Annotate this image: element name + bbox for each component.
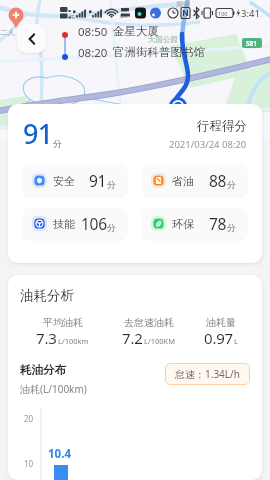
staticText: 7.2 — [122, 328, 143, 348]
staticText: 分 — [53, 138, 62, 149]
staticText: 郑洲 — [176, 0, 190, 9]
staticText: 分 — [227, 222, 236, 233]
staticText: 10.4 — [48, 446, 71, 462]
staticText: B/s — [120, 13, 128, 20]
button[interactable]: 环保 — [142, 208, 247, 239]
staticText: 65 — [121, 6, 128, 13]
staticText: 耗油分布 — [20, 363, 66, 377]
staticText: L/100km — [58, 336, 89, 346]
staticText: 油耗(L/100km) — [20, 382, 87, 396]
staticText: 20 — [24, 413, 34, 424]
staticText: 分 — [107, 222, 116, 233]
staticText: S81 — [246, 39, 258, 48]
staticText: 7.3 — [36, 328, 57, 348]
staticText: 去怠速油耗 — [124, 316, 174, 329]
staticText: 0.97 — [204, 328, 233, 348]
staticText: 分 — [227, 179, 236, 190]
staticText: 省油 — [172, 174, 194, 188]
staticText: 油耗量 — [206, 316, 236, 329]
staticText: 88 — [209, 170, 227, 191]
staticText: 环保 — [172, 217, 194, 231]
staticText: 08:20 — [78, 45, 108, 61]
staticText: 油耗分析 — [20, 287, 74, 304]
staticText: 106 — [81, 213, 107, 234]
staticText: 78 — [209, 213, 227, 234]
button[interactable]: Back — [17, 24, 46, 53]
staticText: 金星大厦 — [113, 24, 159, 38]
staticText: 怠速：1.34L/h — [175, 367, 240, 381]
staticText: 10 — [24, 458, 34, 469]
staticText: 二人 — [0, 28, 15, 37]
staticText: L — [234, 336, 238, 346]
staticText: 分 — [107, 179, 116, 190]
staticText: 3:41 — [241, 7, 260, 20]
staticText: 安全 — [53, 174, 75, 188]
staticText: 91 — [23, 115, 53, 152]
staticText: 2021/03/24 08:20 — [169, 138, 247, 151]
staticText: 平均油耗 — [43, 316, 83, 329]
staticText: L/100KM — [144, 336, 176, 346]
staticText: 91 — [89, 170, 107, 191]
staticText: 技能 — [53, 217, 75, 231]
staticText: 官洲街科普图书馆 — [113, 45, 205, 59]
staticText: 08:50 — [78, 24, 108, 40]
button[interactable]: 技能 — [23, 208, 127, 239]
staticText: 100 — [218, 10, 228, 17]
button[interactable]: 安全 — [23, 165, 127, 196]
staticText: 大国公园 — [148, 35, 178, 44]
staticText: 4G — [69, 14, 75, 20]
button[interactable]: 省油 — [142, 165, 247, 196]
staticText: 行程得分 — [197, 118, 247, 134]
